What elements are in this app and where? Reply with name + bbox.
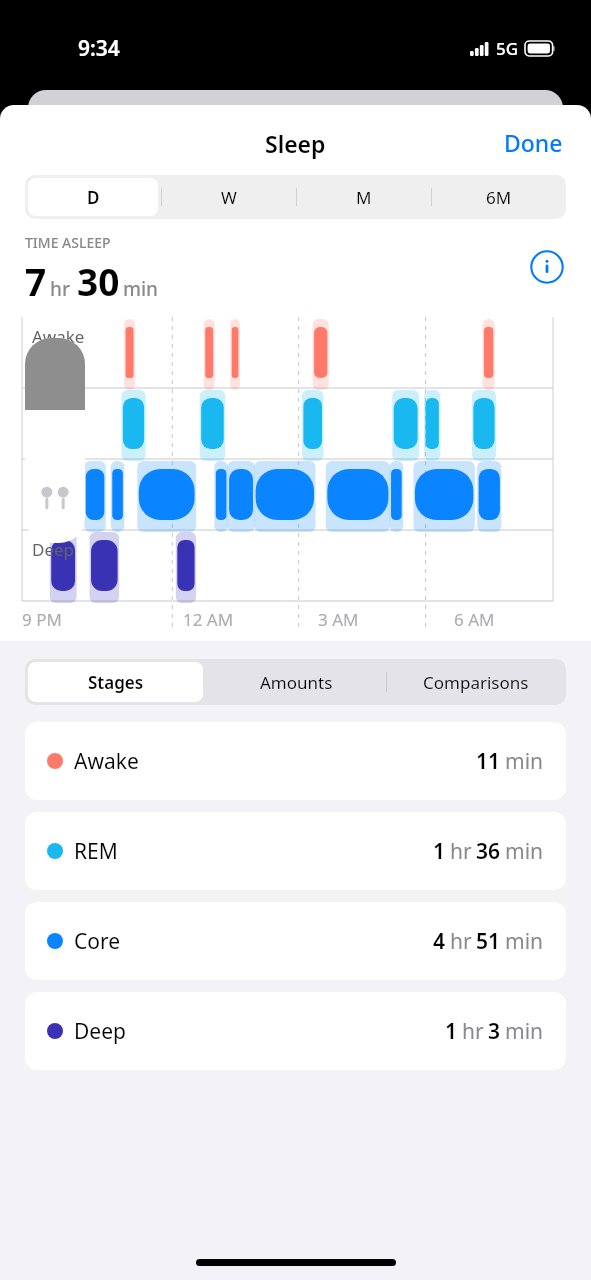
- staticText: 1: [433, 837, 446, 866]
- staticText: Comparisons: [423, 671, 529, 694]
- button[interactable]: Comparisons: [386, 659, 566, 705]
- staticText: 51: [476, 927, 501, 956]
- button[interactable]: Awake: [25, 722, 566, 800]
- staticText: TIME ASLEEP: [25, 233, 111, 252]
- staticText: 3 AM: [318, 608, 359, 631]
- staticText: Deep: [74, 1017, 126, 1046]
- staticText: 9 PM: [22, 608, 62, 631]
- staticText: min: [505, 1017, 544, 1046]
- staticText: min: [505, 747, 544, 776]
- button[interactable]: AirPods battery: [25, 338, 85, 543]
- button[interactable]: W: [161, 175, 296, 219]
- staticText: Amounts: [260, 671, 333, 694]
- staticText: 11: [476, 747, 501, 776]
- staticText: Core: [74, 927, 121, 956]
- staticText: Awake: [74, 747, 139, 776]
- button[interactable]: Deep: [25, 992, 566, 1070]
- staticText: Done: [504, 127, 563, 158]
- staticText: 30: [77, 256, 120, 306]
- button[interactable]: Information about sleep data: [521, 241, 573, 293]
- staticText: 5G: [496, 37, 519, 60]
- staticText: Deep: [32, 538, 75, 561]
- staticText: 12 AM: [183, 608, 234, 631]
- button[interactable]: Core: [25, 902, 566, 980]
- staticText: 7: [25, 256, 47, 306]
- staticText: Core: [32, 467, 70, 490]
- staticText: W: [221, 186, 237, 209]
- staticText: hr: [450, 927, 472, 956]
- staticText: hr: [50, 276, 70, 302]
- staticText: 4: [433, 927, 446, 956]
- button[interactable]: Done: [484, 117, 591, 164]
- staticText: hr: [450, 837, 472, 866]
- staticText: Stages: [88, 671, 144, 694]
- staticText: min: [123, 276, 159, 302]
- staticText: Awake: [32, 325, 85, 348]
- staticText: D: [87, 186, 100, 209]
- staticText: REM: [74, 837, 118, 866]
- staticText: 6 AM: [454, 608, 495, 631]
- staticText: hr: [462, 1017, 484, 1046]
- staticText: 9:34: [78, 34, 120, 63]
- staticText: REM: [32, 396, 68, 419]
- button[interactable]: 6M: [431, 175, 566, 219]
- staticText: M: [356, 186, 372, 209]
- staticText: min: [505, 927, 544, 956]
- staticText: 6M: [486, 186, 512, 209]
- button[interactable]: M: [296, 175, 431, 219]
- staticText: min: [505, 837, 544, 866]
- button[interactable]: D: [25, 175, 161, 219]
- button[interactable]: Amounts: [206, 659, 386, 705]
- staticText: 1: [445, 1017, 458, 1046]
- button[interactable]: REM: [25, 812, 566, 890]
- staticText: Sleep: [265, 128, 326, 159]
- button[interactable]: Stages: [25, 659, 206, 705]
- staticText: 36: [476, 837, 501, 866]
- staticText: 3: [488, 1017, 501, 1046]
